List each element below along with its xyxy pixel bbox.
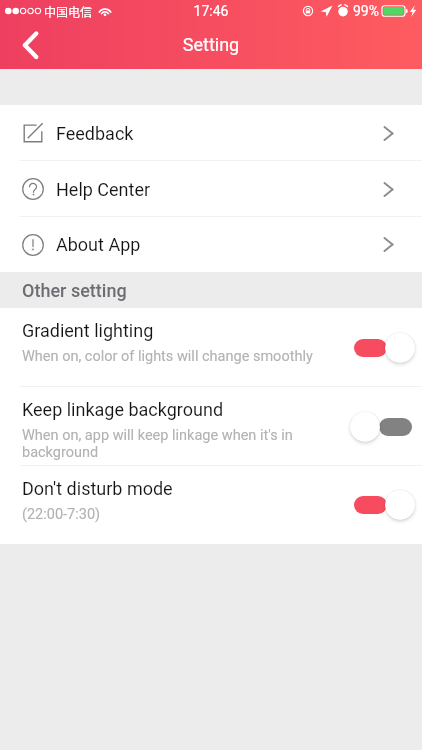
button[interactable]: Feedback <box>0 105 422 161</box>
staticText: Other setting <box>22 280 127 301</box>
staticText: 中国电信 <box>44 3 93 20</box>
staticText: About App <box>56 234 141 255</box>
button[interactable]: Switch on <box>350 331 416 365</box>
staticText: When on, app will keep linkage when it's… <box>22 427 322 461</box>
staticText: Don't disturb mode <box>22 478 173 499</box>
button[interactable]: Help Center <box>0 161 422 217</box>
button[interactable]: Don't disturb mode <box>0 466 422 544</box>
button[interactable]: Switch on <box>350 488 416 522</box>
button[interactable]: Back <box>6 24 50 66</box>
staticText: (22:00-7:30) <box>22 506 101 523</box>
staticText: Gradient lighting <box>22 320 154 341</box>
staticText: Keep linkage background <box>22 399 224 420</box>
staticText: Help Center <box>56 179 151 200</box>
button[interactable]: Switch off <box>350 410 416 444</box>
staticText: When on, color of lights will change smo… <box>22 348 313 365</box>
button[interactable]: Gradient lighting <box>0 308 422 387</box>
button[interactable]: About App <box>0 217 422 272</box>
staticText: Feedback <box>56 123 134 144</box>
button[interactable]: Keep linkage background <box>0 387 422 466</box>
staticText: 99% <box>353 3 379 19</box>
staticText: 17:46 <box>0 3 422 19</box>
staticText: Setting <box>0 34 422 55</box>
